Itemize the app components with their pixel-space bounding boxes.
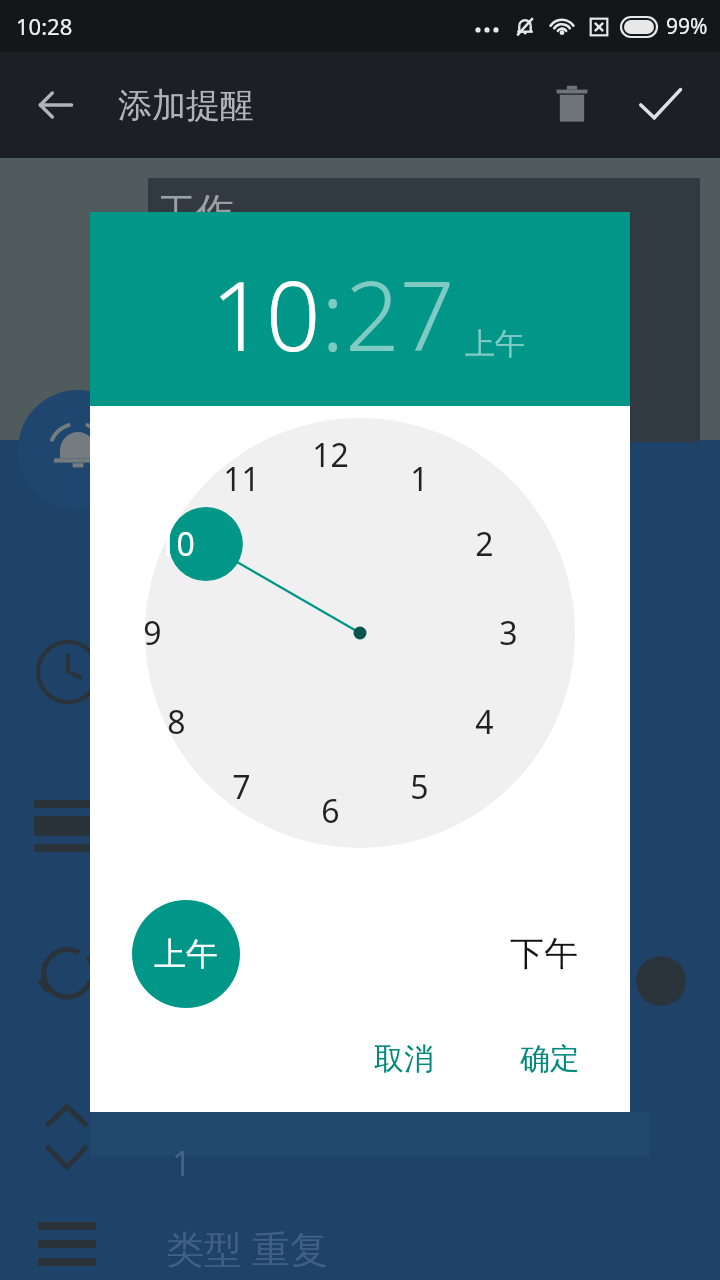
button[interactable]: 8 xyxy=(146,692,206,752)
staticText: 7 xyxy=(232,765,251,809)
button[interactable]: 2 xyxy=(454,514,514,574)
staticText: 工作 xyxy=(158,188,234,236)
button[interactable]: 7 xyxy=(211,757,271,817)
button[interactable]: 取消 xyxy=(354,1026,454,1092)
staticText: 下午 xyxy=(510,932,578,975)
button[interactable]: Delete xyxy=(540,73,604,137)
staticText: : xyxy=(321,248,345,379)
staticText: 12 xyxy=(312,433,349,477)
button[interactable]: 10 xyxy=(211,248,321,379)
staticText: 1 xyxy=(172,1140,192,1186)
button[interactable]: 9 xyxy=(122,603,182,663)
staticText: 10:28 xyxy=(16,11,73,41)
button[interactable]: Done xyxy=(628,73,692,137)
button[interactable]: 27 xyxy=(345,248,455,379)
button[interactable]: Back xyxy=(22,71,90,139)
staticText: 1 xyxy=(410,457,429,501)
button[interactable]: 6 xyxy=(300,781,360,841)
staticText: 8 xyxy=(167,700,186,744)
staticText: 9 xyxy=(143,611,162,655)
button[interactable]: 5 xyxy=(389,757,449,817)
staticText: 上午 xyxy=(465,325,525,363)
staticText: 添加提醒 xyxy=(118,84,254,127)
staticText: 6 xyxy=(321,789,340,833)
staticText: 11 xyxy=(223,457,260,501)
button[interactable]: 12 xyxy=(300,425,360,485)
button[interactable]: 上午 xyxy=(132,900,240,1008)
button[interactable]: 4 xyxy=(454,692,514,752)
staticText: 上午 xyxy=(154,934,218,974)
button[interactable]: 3 xyxy=(478,603,538,663)
button[interactable]: 11 xyxy=(211,449,271,509)
button[interactable]: 1 xyxy=(389,449,449,509)
staticText: 4 xyxy=(475,700,494,744)
button[interactable]: 下午 xyxy=(500,926,588,981)
staticText: 99% xyxy=(666,12,708,41)
staticText: 取消 xyxy=(374,1040,434,1078)
staticText: 5 xyxy=(410,765,429,809)
staticText: 确定 xyxy=(520,1040,580,1078)
staticText: 类型 重复 xyxy=(166,1222,328,1274)
button[interactable]: Reminder xyxy=(18,390,138,510)
staticText: 3 xyxy=(499,611,518,655)
button[interactable]: 确定 xyxy=(500,1026,600,1092)
button[interactable]: 10 xyxy=(146,514,206,574)
staticText: 10 xyxy=(158,522,195,566)
staticText: 2 xyxy=(475,522,494,566)
